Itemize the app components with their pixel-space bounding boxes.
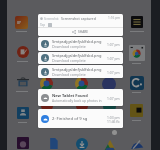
button[interactable]: App xyxy=(103,100,116,113)
staticText: Download complete xyxy=(52,58,86,63)
button[interactable]: App xyxy=(102,77,116,91)
button[interactable]: Smtpsdjgsldnfjsklfskd.png xyxy=(38,65,123,78)
button[interactable]: Chrome xyxy=(40,77,53,90)
staticText: Smtpsdjgsldnfjsklfskd.png xyxy=(52,53,102,58)
staticText: 2· Finished of 9 sg xyxy=(52,116,88,122)
button[interactable]: App xyxy=(130,104,143,117)
button[interactable]: App xyxy=(76,100,88,112)
staticText: Screenshot captured xyxy=(61,16,96,21)
button[interactable]: Chrome xyxy=(129,45,145,61)
button[interactable]: 2· Finished of 9 sg xyxy=(38,109,123,128)
button[interactable]: Smtpsdjgsldnfjsklfskd.png xyxy=(38,52,123,64)
button[interactable]: Chrome xyxy=(75,77,88,90)
staticText: 1:07 pm xyxy=(107,56,120,60)
staticText: Screenshot xyxy=(44,17,59,21)
button[interactable]: App xyxy=(41,100,53,112)
button[interactable]: SHARE xyxy=(38,28,123,36)
staticText: Download complete xyxy=(52,72,86,77)
staticText: Smtpsdjgsldnfjsklfskd.png xyxy=(52,39,102,44)
staticText: 1:07 pm xyxy=(107,42,120,46)
button[interactable]: App xyxy=(17,137,29,149)
button[interactable]: App xyxy=(130,76,144,90)
staticText: 11:46 fb xyxy=(107,119,120,123)
staticText: Download complete xyxy=(52,44,86,49)
staticText: 1:07 pm xyxy=(107,70,120,74)
button[interactable]: App xyxy=(130,136,144,150)
staticText: 1:07 pm xyxy=(107,96,120,100)
staticText: Automatically back up photos in Screensh… xyxy=(52,98,107,102)
button[interactable]: Drive xyxy=(103,138,117,150)
button[interactable]: Media player xyxy=(131,16,143,28)
button[interactable]: PDF app xyxy=(17,46,29,58)
staticText: Tap xyxy=(40,23,46,27)
button[interactable]: Smtpsdjgsldnfjsklfskd.png xyxy=(38,37,123,51)
button[interactable]: Docs xyxy=(48,138,59,149)
staticText: 1:03 pm xyxy=(107,115,120,119)
staticText: New Tablet Found xyxy=(52,93,88,98)
button[interactable]: Downloads xyxy=(76,138,88,150)
button[interactable]: New Tablet Found xyxy=(38,89,123,106)
staticText: 1:16 pm xyxy=(108,16,121,20)
button[interactable]: App xyxy=(15,16,28,29)
staticText: SHARE xyxy=(78,30,89,34)
button[interactable]: Contacts xyxy=(17,107,29,119)
staticText: Smtpsdjgsldnfjsklfskd.png xyxy=(52,67,102,72)
button[interactable]: Store xyxy=(17,76,29,88)
